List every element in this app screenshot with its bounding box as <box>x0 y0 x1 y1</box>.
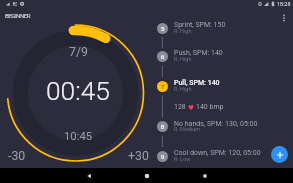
staticText: Push, SPM: 140 <box>174 49 223 57</box>
staticText: 00:45 <box>46 76 110 107</box>
button[interactable] <box>146 14 293 43</box>
staticText: 7 <box>161 83 165 90</box>
staticText: Pull, SPM: 140 <box>174 79 220 87</box>
staticText: 9 <box>161 153 165 160</box>
button[interactable]: Back <box>60 168 118 183</box>
staticText: 10:45 <box>64 130 93 143</box>
staticText: BEGINNER <box>5 12 31 19</box>
staticText: R: Low <box>174 156 191 162</box>
button[interactable] <box>146 72 293 101</box>
staticText: R: Medium <box>174 126 201 132</box>
staticText: R: High <box>174 86 192 92</box>
button[interactable]: More options <box>276 10 292 26</box>
staticText: +30 <box>128 149 149 163</box>
staticText: 8 <box>161 123 165 130</box>
staticText: 6 <box>161 53 165 60</box>
button[interactable]: +30 <box>128 149 149 163</box>
button[interactable]: Home <box>118 168 176 183</box>
button[interactable] <box>146 112 293 141</box>
staticText: Sprint, SPM: 150 <box>174 21 226 29</box>
button[interactable] <box>146 42 293 71</box>
staticText: No hands, SPM: 130, 05:00 <box>174 120 258 128</box>
staticText: 5 <box>161 25 165 32</box>
staticText: -30 <box>8 149 26 163</box>
staticText: R: High <box>174 56 192 62</box>
staticText: 18:28 <box>277 1 291 7</box>
staticText: 140 bmp <box>196 103 224 111</box>
staticText: Cool down, SPM: 120, 05:00 <box>174 149 261 157</box>
button[interactable] <box>146 142 293 171</box>
staticText: 7/9 <box>69 45 88 59</box>
button[interactable]: Add <box>271 146 288 163</box>
staticText: 128 <box>174 103 186 111</box>
button[interactable]: Recents <box>176 168 234 183</box>
staticText: R: High <box>174 28 192 34</box>
button[interactable]: -30 <box>8 149 26 163</box>
